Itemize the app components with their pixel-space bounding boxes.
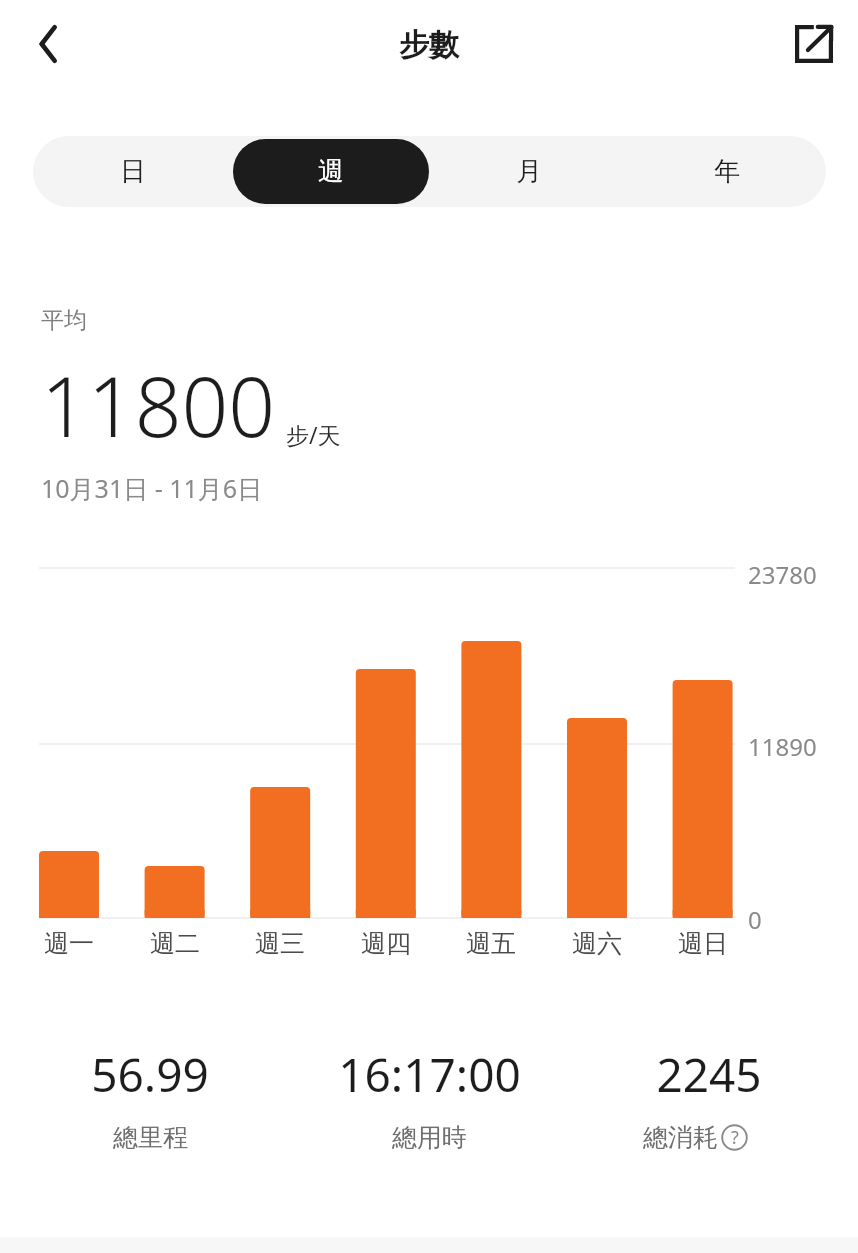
staticText: 23780 (748, 558, 817, 591)
staticText: 10月31日 - 11月6日 (41, 471, 263, 505)
staticText: 週三 (255, 928, 305, 959)
staticText: 週一 (44, 928, 94, 959)
staticText: 步/天 (286, 419, 341, 450)
staticText: 總用時 (392, 1122, 467, 1153)
staticText: 11890 (748, 730, 817, 763)
staticText: 年 (714, 155, 740, 188)
button[interactable]: 年 (629, 139, 825, 204)
button[interactable]: 16:17:00 (290, 1043, 569, 1153)
staticText: 週六 (572, 928, 622, 959)
staticText: 週日 (678, 928, 728, 959)
staticText: 週五 (466, 928, 516, 959)
staticText: 0 (748, 903, 762, 936)
staticText: ? (731, 1125, 739, 1150)
staticText: 總里程 (113, 1122, 188, 1153)
button[interactable]: 2245 (569, 1043, 848, 1153)
staticText: 16:17:00 (338, 1043, 521, 1106)
button[interactable]: 月 (431, 139, 627, 204)
staticText: 週 (318, 155, 344, 188)
button[interactable]: 週 (233, 139, 429, 204)
staticText: 平均 (41, 306, 87, 335)
staticText: 56.99 (91, 1043, 209, 1106)
staticText: 總消耗 (643, 1122, 718, 1153)
staticText: 月 (516, 155, 542, 188)
button[interactable]: 日 (34, 139, 231, 204)
button[interactable]: 56.99 (10, 1043, 290, 1153)
staticText: 週二 (150, 928, 200, 959)
button[interactable]: Share (778, 8, 850, 80)
staticText: 週四 (361, 928, 411, 959)
staticText: 2245 (656, 1043, 762, 1106)
button[interactable]: Back (14, 9, 84, 79)
staticText: 11800 (41, 349, 276, 461)
staticText: 日 (120, 155, 146, 188)
staticText: 步數 (399, 26, 459, 64)
